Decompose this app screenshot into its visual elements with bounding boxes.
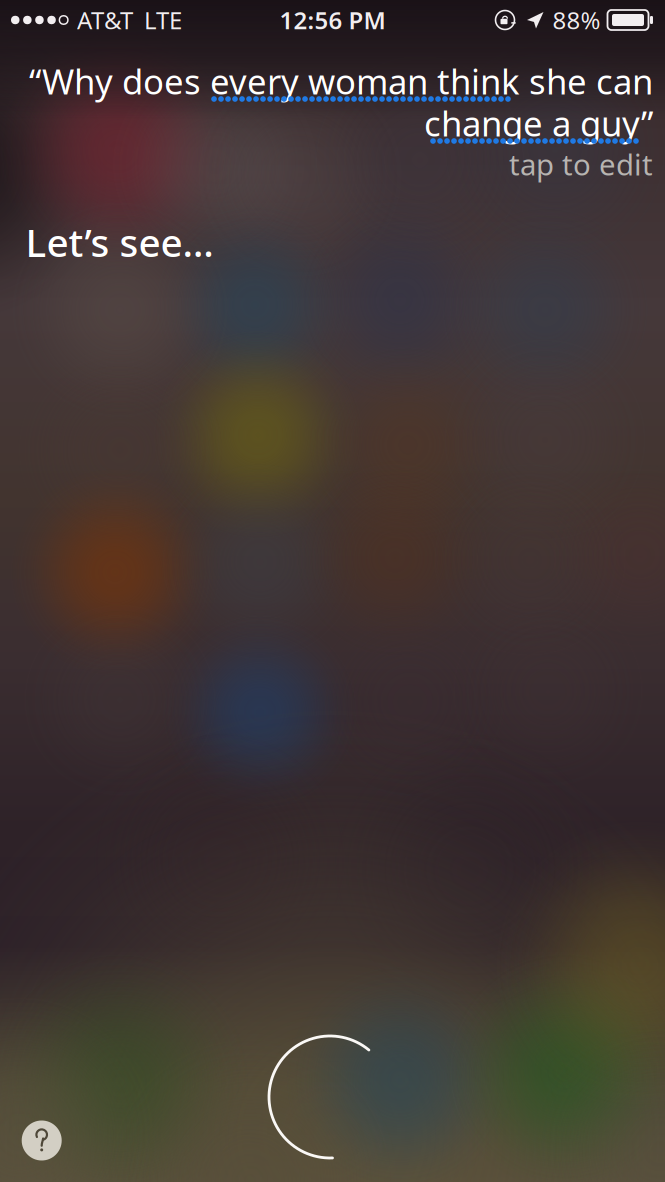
button[interactable]: Siri help (22, 1120, 62, 1160)
staticText: change a guy” (424, 100, 653, 146)
staticText: Let’s see… (25, 216, 213, 268)
button[interactable]: “Why does every woman think she can (0, 0, 665, 1182)
staticText: tap to edit (509, 144, 653, 183)
staticText: AT&T (77, 4, 133, 36)
staticText: 88% (552, 4, 600, 36)
staticText: 12:56 PM (279, 4, 385, 36)
staticText: LTE (144, 4, 182, 36)
staticText: “Why does every woman think she can (29, 58, 653, 104)
